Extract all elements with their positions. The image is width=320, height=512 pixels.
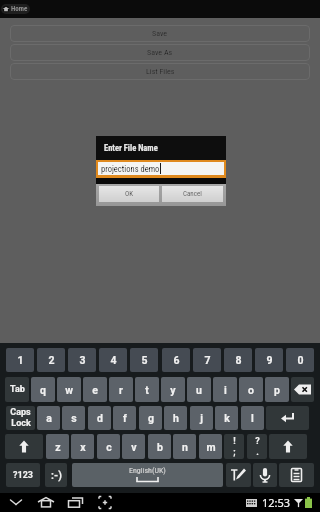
staticText: q xyxy=(40,384,46,396)
button[interactable]: handwrite xyxy=(226,463,251,487)
button[interactable]: m xyxy=(199,434,222,459)
button[interactable]: Save xyxy=(10,25,310,42)
button[interactable]: :-) xyxy=(45,463,67,487)
button[interactable]: z xyxy=(46,434,69,459)
button[interactable]: p xyxy=(265,377,289,402)
button[interactable]: shift xyxy=(269,434,307,459)
button[interactable]: l xyxy=(241,406,264,430)
button[interactable]: g xyxy=(139,406,162,430)
staticText: Cancel xyxy=(183,190,202,198)
button[interactable]: enter xyxy=(266,406,309,430)
staticText: :-) xyxy=(51,469,62,481)
staticText: d xyxy=(97,412,103,424)
button[interactable]: a xyxy=(37,406,60,430)
button[interactable]: Hide keyboard xyxy=(8,493,24,512)
staticText: u xyxy=(196,384,202,396)
button[interactable]: 0 xyxy=(286,348,314,372)
button[interactable]: Screenshot xyxy=(97,493,113,512)
staticText: 8 xyxy=(235,354,242,366)
button[interactable]: 1 xyxy=(6,348,34,372)
staticText: 1 xyxy=(17,354,24,366)
staticText: Home xyxy=(11,5,28,13)
button[interactable]: q xyxy=(31,377,55,402)
staticText: ! xyxy=(233,436,236,447)
button[interactable]: n xyxy=(173,434,196,459)
staticText: v xyxy=(131,441,137,453)
button[interactable]: d xyxy=(88,406,111,430)
button[interactable]: v xyxy=(122,434,145,459)
button[interactable]: Home xyxy=(1,4,30,14)
staticText: b xyxy=(157,441,163,453)
button[interactable]: shift xyxy=(5,434,43,459)
button[interactable]: k xyxy=(215,406,238,430)
staticText: 7 xyxy=(204,354,211,366)
button[interactable]: space xyxy=(72,463,223,487)
button[interactable]: j xyxy=(190,406,213,430)
button[interactable]: Home xyxy=(37,493,55,512)
staticText: ?123 xyxy=(13,470,33,481)
button[interactable]: o xyxy=(239,377,263,402)
button[interactable]: e xyxy=(83,377,107,402)
button[interactable]: 9 xyxy=(255,348,283,372)
button[interactable]: ! xyxy=(224,434,244,459)
button[interactable]: mic xyxy=(253,463,277,487)
staticText: f xyxy=(123,412,127,424)
staticText: j xyxy=(200,412,203,424)
button[interactable]: x xyxy=(71,434,94,459)
staticText: 2 xyxy=(48,354,55,366)
button[interactable]: t xyxy=(135,377,159,402)
other: Home xyxy=(1,4,11,14)
button[interactable]: Recent apps xyxy=(67,493,84,512)
button[interactable]: c xyxy=(97,434,120,459)
button[interactable]: 8 xyxy=(224,348,252,372)
button[interactable]: r xyxy=(109,377,133,402)
button[interactable]: 5 xyxy=(130,348,158,372)
staticText: ? xyxy=(255,436,260,447)
staticText: z xyxy=(55,441,61,453)
staticText: y xyxy=(170,384,176,396)
button[interactable]: s xyxy=(62,406,85,430)
button[interactable]: Tab xyxy=(5,377,29,402)
staticText: a xyxy=(46,412,52,424)
button[interactable]: OK xyxy=(99,186,159,202)
staticText: . xyxy=(256,447,259,458)
button[interactable]: 2 xyxy=(37,348,65,372)
button[interactable]: h xyxy=(164,406,187,430)
button[interactable]: u xyxy=(187,377,211,402)
staticText: o xyxy=(248,384,254,396)
button[interactable]: Caps xyxy=(6,406,35,430)
button[interactable]: Cancel xyxy=(162,186,223,202)
button[interactable]: ?123 xyxy=(6,463,40,487)
button[interactable]: ? xyxy=(247,434,267,459)
staticText: n xyxy=(182,441,188,453)
staticText: Caps xyxy=(10,407,31,418)
button[interactable]: 7 xyxy=(193,348,221,372)
staticText: 9 xyxy=(266,354,273,366)
staticText: k xyxy=(224,412,230,424)
staticText: 12:53 xyxy=(262,495,291,510)
button[interactable]: settings xyxy=(279,463,314,487)
staticText: e xyxy=(92,384,98,396)
button[interactable]: 4 xyxy=(99,348,127,372)
button[interactable]: i xyxy=(213,377,237,402)
staticText: r xyxy=(119,384,123,396)
button[interactable]: backspace xyxy=(291,377,314,402)
staticText: List Files xyxy=(146,67,175,76)
button[interactable]: f xyxy=(113,406,136,430)
staticText: Lock xyxy=(11,418,31,429)
staticText: OK xyxy=(125,190,134,198)
button[interactable]: w xyxy=(57,377,81,402)
button[interactable]: y xyxy=(161,377,185,402)
staticText: i xyxy=(224,384,227,396)
button[interactable]: 3 xyxy=(68,348,96,372)
button[interactable]: Save As xyxy=(10,44,310,61)
staticText: 6 xyxy=(173,354,180,366)
button[interactable]: 6 xyxy=(162,348,190,372)
staticText: Save xyxy=(152,29,168,38)
button[interactable]: b xyxy=(148,434,171,459)
staticText: g xyxy=(148,412,154,424)
staticText: projections demo xyxy=(101,164,160,174)
staticText: Enter File Name xyxy=(104,143,158,153)
button[interactable]: List Files xyxy=(10,63,310,80)
staticText: Tab xyxy=(10,384,25,395)
